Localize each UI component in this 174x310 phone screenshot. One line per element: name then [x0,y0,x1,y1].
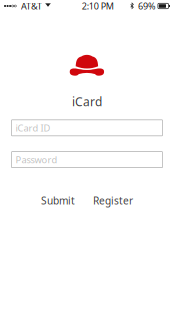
staticText: Password [15,153,57,166]
staticText: Register [93,194,133,207]
staticText: iCard ID [15,121,50,134]
staticText: 2:10 PM [82,0,114,12]
button[interactable]: Register [93,192,133,209]
staticText: iCard [72,93,102,110]
button[interactable]: Submit [41,192,75,209]
staticText: Submit [41,194,75,207]
staticText: 69% [138,0,156,12]
staticText: AT&T [21,0,42,12]
